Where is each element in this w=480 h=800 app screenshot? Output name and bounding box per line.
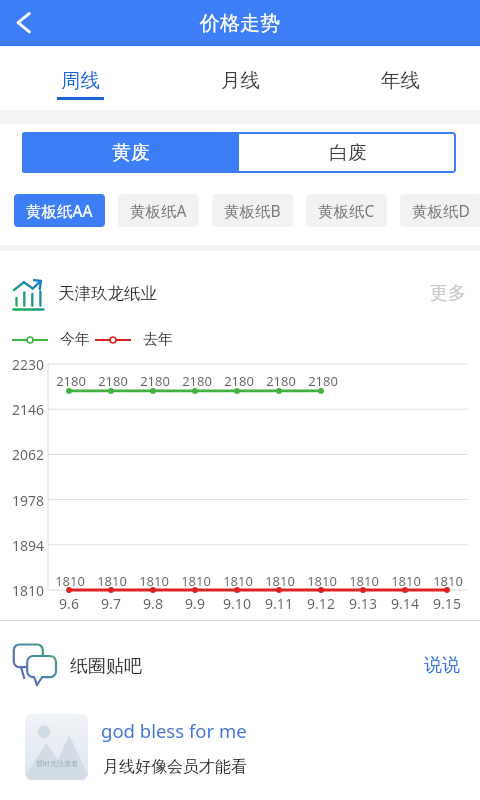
staticText: 9.13 <box>342 594 384 613</box>
staticText: 2180 <box>134 372 176 390</box>
staticText: 1978 <box>8 491 44 510</box>
staticText: 暂时无法查看 <box>36 759 78 768</box>
staticText: 9.6 <box>48 594 90 613</box>
staticText: 价格走势 <box>200 11 280 36</box>
staticText: 1810 <box>259 572 301 590</box>
button[interactable]: 黄板纸A <box>118 194 199 227</box>
staticText: 1810 <box>133 572 175 590</box>
button[interactable]: 黄板纸AA <box>14 194 105 227</box>
button[interactable]: 月线 <box>160 46 320 110</box>
staticText: 天津玖龙纸业 <box>58 283 157 304</box>
staticText: 月线 <box>221 68 260 93</box>
staticText: 月线好像会员才能看 <box>103 757 247 777</box>
staticText: 2180 <box>176 372 218 390</box>
staticText: 黄板纸AA <box>26 200 93 221</box>
staticText: 9.7 <box>90 594 132 613</box>
staticText: 9.15 <box>426 594 468 613</box>
staticText: 去年 <box>143 330 173 349</box>
staticText: 白废 <box>329 141 367 165</box>
staticText: 1810 <box>91 572 133 590</box>
staticText: 黄废 <box>112 141 150 165</box>
button[interactable]: 白废 <box>239 132 456 173</box>
staticText: 黄板纸A <box>130 200 187 221</box>
button[interactable]: god bless for me <box>101 718 247 743</box>
staticText: 9.14 <box>384 594 426 613</box>
staticText: 2180 <box>50 372 92 390</box>
staticText: 1810 <box>343 572 385 590</box>
button[interactable]: 黄板纸C <box>306 194 387 227</box>
staticText: 9.8 <box>132 594 174 613</box>
staticText: 9.10 <box>216 594 258 613</box>
staticText: 2180 <box>218 372 260 390</box>
staticText: 1810 <box>175 572 217 590</box>
button[interactable]: 黄板纸B <box>212 194 293 227</box>
staticText: 黄板纸B <box>224 200 281 221</box>
button[interactable]: 年线 <box>320 46 480 110</box>
staticText: 纸圈贴吧 <box>70 655 142 678</box>
staticText: 2180 <box>302 372 344 390</box>
staticText: 周线 <box>61 68 100 93</box>
staticText: 1810 <box>385 572 427 590</box>
staticText: 2180 <box>92 372 134 390</box>
staticText: 9.9 <box>174 594 216 613</box>
staticText: 黄板纸D <box>412 200 470 221</box>
staticText: 2062 <box>8 445 44 464</box>
staticText: 2230 <box>8 355 44 374</box>
staticText: 更多 <box>430 282 466 305</box>
button[interactable]: 黄板纸D <box>400 194 480 227</box>
staticText: 2146 <box>8 400 44 419</box>
button[interactable]: 说说 <box>416 650 468 680</box>
staticText: 1810 <box>8 581 44 600</box>
staticText: 1810 <box>217 572 259 590</box>
button[interactable]: 黄废 <box>22 132 239 173</box>
staticText: 1894 <box>8 536 44 555</box>
staticText: 黄板纸C <box>318 200 375 221</box>
staticText: 9.11 <box>258 594 300 613</box>
staticText: 1810 <box>49 572 91 590</box>
staticText: 2180 <box>260 372 302 390</box>
staticText: 年线 <box>381 68 420 93</box>
staticText: 说说 <box>424 654 460 677</box>
staticText: 今年 <box>60 330 90 349</box>
staticText: 1810 <box>427 572 469 590</box>
button[interactable]: 周线 <box>0 46 160 110</box>
button[interactable]: 更多 <box>422 278 474 308</box>
button[interactable]: Back <box>0 0 48 46</box>
button[interactable]: 暂时无法查看 <box>25 714 88 780</box>
staticText: 9.12 <box>300 594 342 613</box>
staticText: 1810 <box>301 572 343 590</box>
